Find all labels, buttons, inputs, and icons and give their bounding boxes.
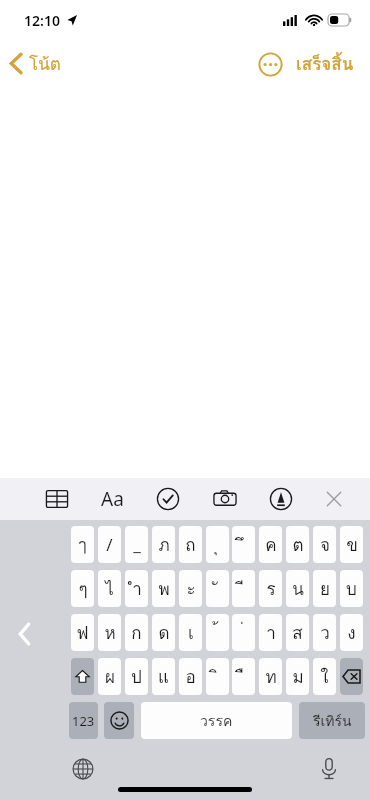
staticText: แ [158,663,169,690]
staticText: รีเทิร์น [313,710,352,732]
staticText: ำ [132,575,142,602]
staticText: โน้ต [29,50,61,77]
button[interactable]: ึ [232,526,255,563]
button[interactable]: เสร็จสิ้น [292,46,358,81]
staticText: เสร็จสิ้น [296,50,354,77]
staticText: Aa [101,486,124,512]
button[interactable]: ่ [232,614,255,651]
button[interactable]: Change keyboard [67,753,99,785]
staticText: 12:10 [24,11,60,30]
button[interactable]: 123 [69,702,98,739]
staticText: ๆ [78,575,88,602]
button[interactable]: ั [206,570,229,607]
button[interactable]: ไ [98,570,121,607]
button[interactable]: บ [340,570,363,607]
button[interactable]: ก [125,614,148,651]
staticText: ไ [105,575,114,602]
button[interactable]: ร [259,570,282,607]
staticText: ะ [186,575,196,602]
button[interactable]: ำ [125,570,148,607]
button[interactable]: Backspace [340,658,363,695]
button[interactable]: ผ [98,658,121,695]
button[interactable]: ิ [206,658,229,695]
button[interactable]: ง [340,614,363,651]
button[interactable]: วรรค [141,702,292,739]
staticText: / [106,533,113,556]
button[interactable]: _ [125,526,148,563]
button[interactable]: Table [38,478,76,520]
staticText: ง [347,619,356,646]
button[interactable]: รีเทิร์น [299,702,365,739]
staticText: ใ [320,663,329,690]
staticText: ห [104,619,116,646]
staticText: ผ [105,663,115,690]
button[interactable]: ถ [179,526,202,563]
button[interactable]: Markup [262,478,300,520]
button[interactable]: ๆ [71,570,94,607]
staticText: ร [266,575,276,602]
staticText: ฟ [76,619,89,646]
button[interactable]: า [259,614,282,651]
staticText: _ [133,533,141,556]
button[interactable]: โน้ต [0,46,71,81]
staticText: ว [320,619,330,646]
button[interactable]: ้ [206,614,229,651]
staticText: 123 [72,712,95,730]
staticText: ม [292,663,304,690]
button[interactable]: ท [259,658,282,695]
button[interactable]: Emoji [104,702,134,739]
staticText: ภ [158,531,170,558]
button[interactable]: ๅ [71,526,94,563]
button[interactable]: Camera [206,478,244,520]
button[interactable]: ื [232,658,255,695]
button[interactable]: น [286,570,309,607]
button[interactable]: ว [313,614,336,651]
button[interactable]: Close keyboard [315,478,353,520]
staticText: ๅ [78,531,87,558]
staticText: ส [292,619,303,646]
button[interactable]: ใ [313,658,336,695]
button[interactable]: / [98,526,121,563]
button[interactable]: Text format [93,478,131,520]
staticText: เ [188,619,194,646]
button[interactable]: พ [152,570,175,607]
button[interactable]: Checklist [149,478,187,520]
button[interactable]: ย [313,570,336,607]
button[interactable]: ุ [206,526,229,563]
button[interactable]: More options [254,48,286,80]
button[interactable]: ส [286,614,309,651]
button[interactable]: ต [286,526,309,563]
staticText: บ [346,575,357,602]
button[interactable]: Dictate [313,753,345,785]
staticText: ก [131,619,142,646]
button[interactable]: ี [232,570,255,607]
button[interactable]: ห [98,614,121,651]
button[interactable]: Previous keyboard [8,618,40,650]
staticText: อ [185,663,196,690]
button[interactable]: ด [152,614,175,651]
button[interactable]: ฟ [71,614,94,651]
button[interactable]: ฝ [340,658,363,695]
button[interactable]: Aa [94,478,130,520]
button[interactable]: จ [313,526,336,563]
staticText: จ [320,531,330,558]
button[interactable]: ม [286,658,309,695]
staticText: ย [320,575,330,602]
button[interactable]: เ [179,614,202,651]
button[interactable]: ค [259,526,282,563]
staticText: ท [265,663,277,690]
staticText: ข [346,531,358,558]
button[interactable]: ข [340,526,363,563]
staticText: ต [292,531,304,558]
button[interactable]: ะ [179,570,202,607]
staticText: า [266,619,276,646]
staticText: ป [131,663,142,690]
staticText: ถ [185,531,196,558]
button[interactable]: ภ [152,526,175,563]
staticText: พ [158,575,170,602]
button[interactable]: ป [125,658,148,695]
button[interactable]: Shift [71,658,94,695]
button[interactable]: อ [179,658,202,695]
button[interactable]: แ [152,658,175,695]
staticText: ด [158,619,170,646]
